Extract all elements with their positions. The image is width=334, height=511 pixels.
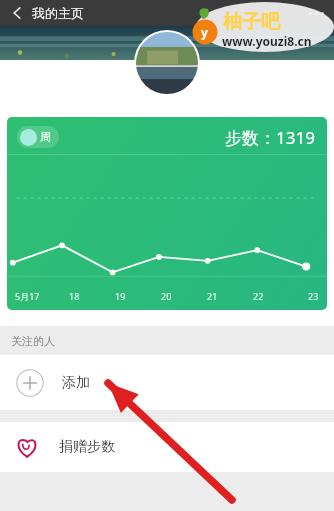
button[interactable]: Profile avatar: [136, 32, 198, 94]
staticText: 20: [161, 290, 172, 302]
staticText: y: [201, 24, 208, 40]
staticText: www.youzi8.cn: [222, 33, 312, 49]
staticText: 添加: [62, 374, 90, 392]
staticText: 18: [69, 290, 80, 302]
button[interactable]: 周: [20, 126, 56, 148]
button[interactable]: More options: [309, 12, 324, 15]
staticText: 我的主页: [32, 5, 84, 21]
staticText: 步数：1319: [225, 126, 315, 149]
staticText: 周: [40, 130, 51, 144]
button[interactable]: 捐赠步数: [0, 422, 334, 472]
staticText: 柚子吧: [223, 10, 280, 34]
staticText: 捐赠步数: [59, 438, 115, 456]
staticText: 5月17: [15, 290, 40, 302]
staticText: 22: [253, 290, 264, 302]
button[interactable]: 添加: [0, 355, 334, 410]
staticText: 19: [115, 290, 126, 302]
button[interactable]: Back: [9, 5, 25, 21]
button[interactable]: 周: [7, 117, 327, 310]
staticText: 23: [308, 290, 319, 302]
staticText: 21: [207, 290, 218, 302]
staticText: 关注的人: [11, 334, 55, 348]
